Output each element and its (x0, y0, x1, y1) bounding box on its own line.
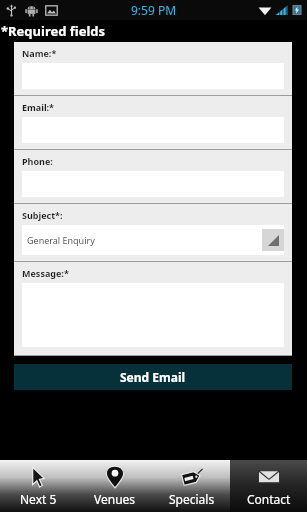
button[interactable]: Contact (230, 460, 307, 512)
staticText: Contact (247, 491, 291, 507)
staticText: Venues (94, 491, 136, 507)
button[interactable]: Next 5 (0, 460, 76, 512)
staticText: Message:* (22, 267, 69, 279)
staticText: Specials (169, 491, 215, 507)
button[interactable]: Send Email (14, 364, 292, 390)
staticText: General Enquiry (27, 234, 262, 246)
staticText: Send Email (120, 369, 186, 385)
staticText: Phone: (22, 155, 53, 167)
staticText: 9:59 PM (131, 2, 177, 18)
staticText: Email:* (22, 101, 54, 113)
staticText: Subject*: (22, 209, 63, 221)
other: Open subject dropdown (262, 229, 284, 251)
button[interactable]: Venues (76, 460, 153, 512)
staticText: Name:* (22, 47, 57, 59)
button[interactable]: General Enquiry (22, 225, 284, 255)
button[interactable]: Specials (153, 460, 230, 512)
staticText: Next 5 (20, 491, 57, 507)
staticText: *Required fields (1, 22, 106, 40)
